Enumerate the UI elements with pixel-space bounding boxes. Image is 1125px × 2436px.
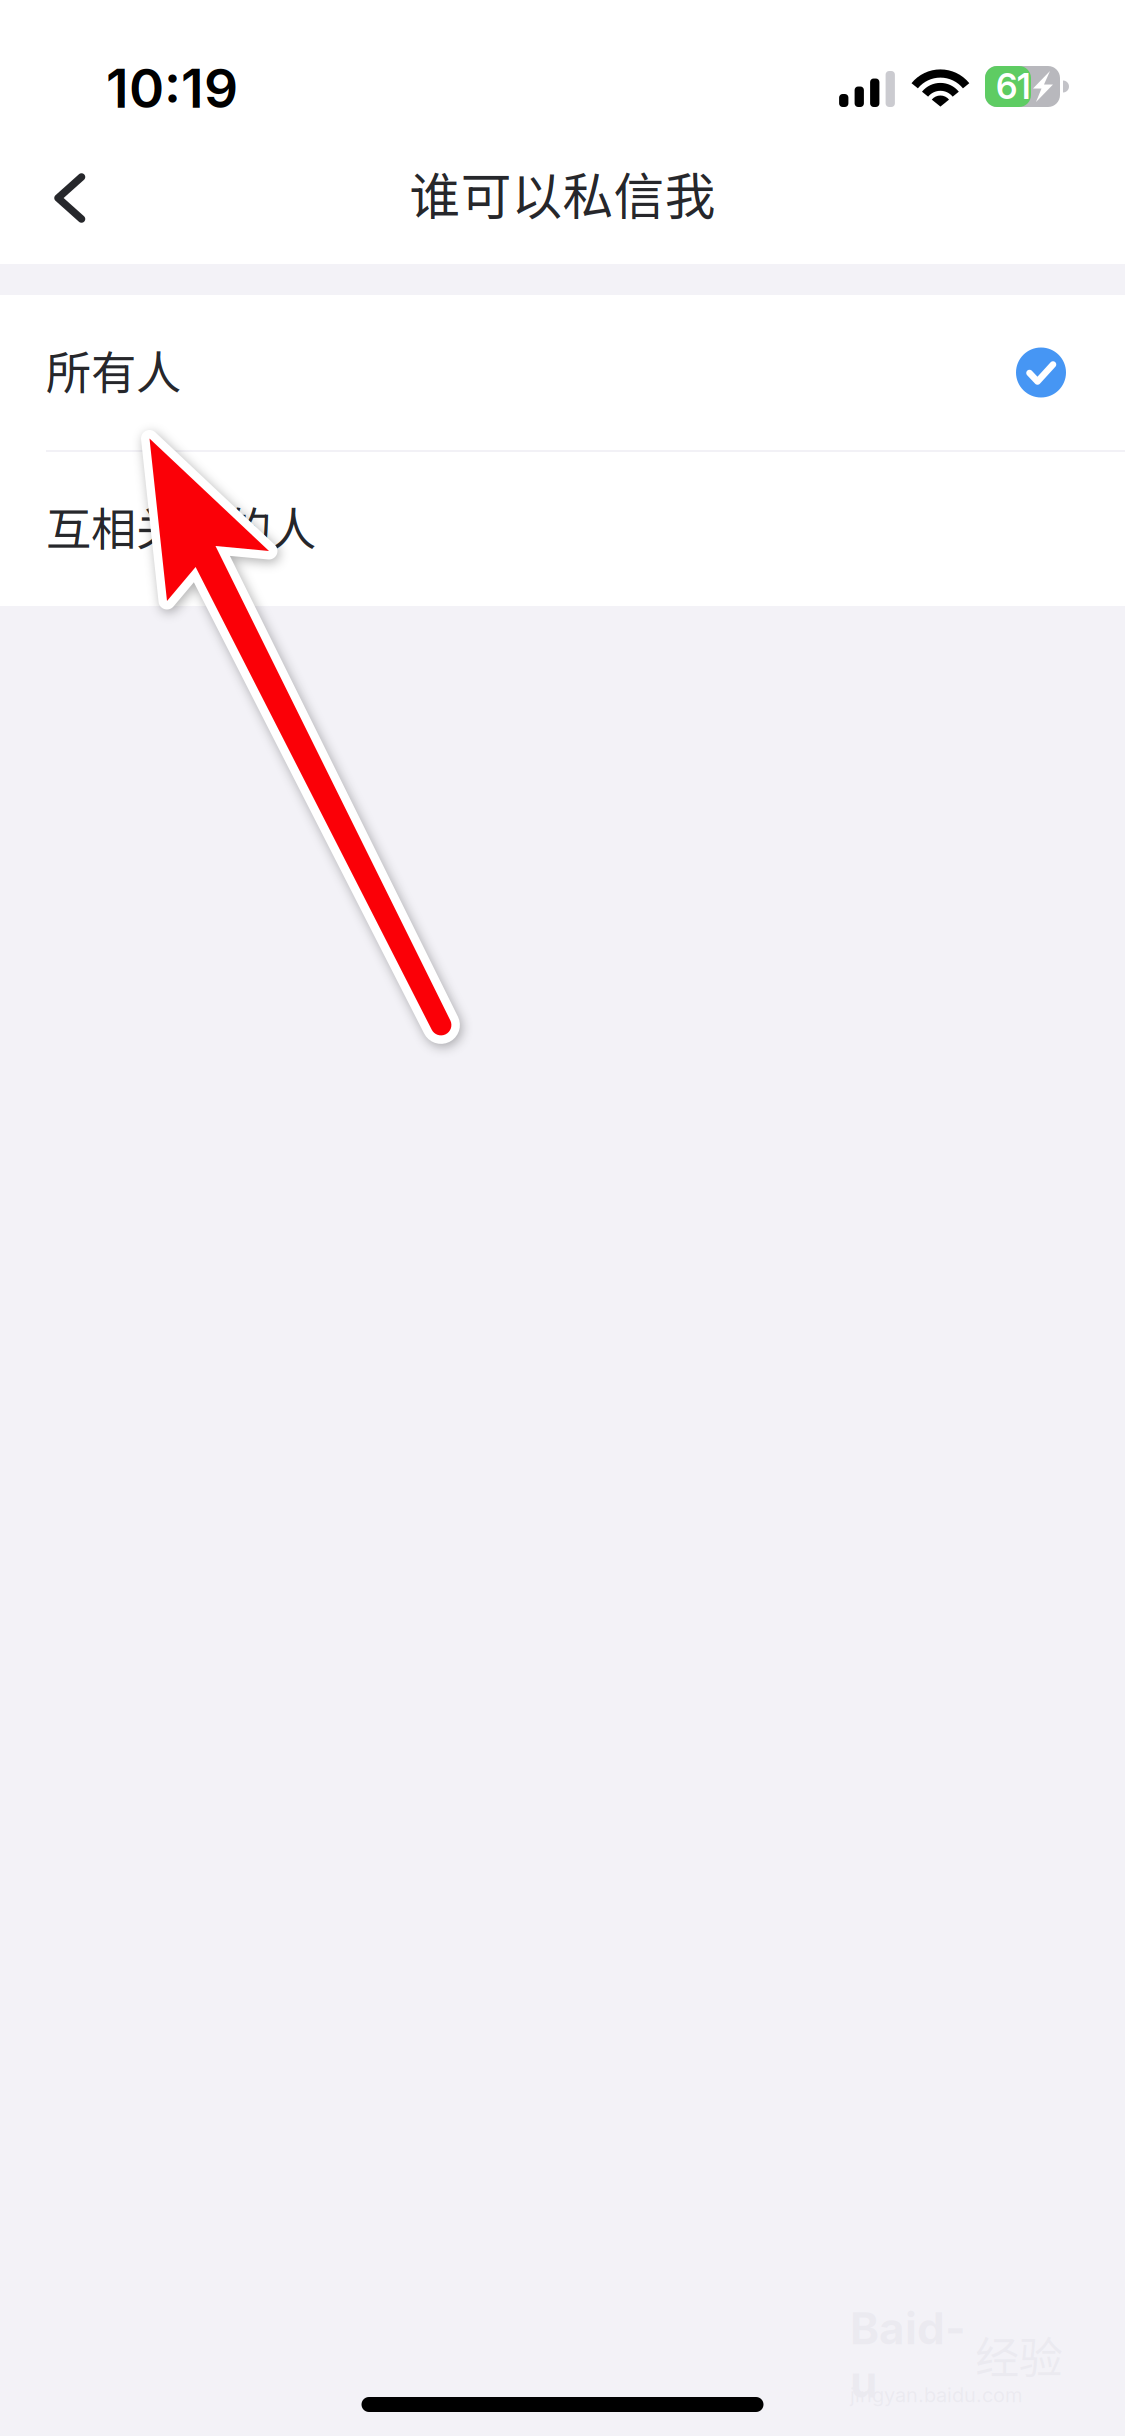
button[interactable]: 互相关注的人 bbox=[0, 452, 1125, 606]
staticText: 谁可以私信我 bbox=[409, 156, 715, 230]
button[interactable]: 所有人 bbox=[0, 295, 1125, 450]
button[interactable]: Back bbox=[0, 132, 140, 264]
staticText: 所有人 bbox=[46, 337, 181, 402]
staticText: 61 bbox=[996, 65, 1031, 107]
staticText: 互相关注的人 bbox=[46, 493, 316, 559]
staticText: 10:19 bbox=[106, 56, 238, 120]
